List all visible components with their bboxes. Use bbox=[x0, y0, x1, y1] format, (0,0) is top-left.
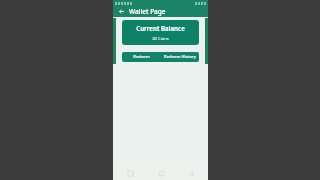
button[interactable]: Back bbox=[186, 168, 196, 178]
button[interactable]: Current Balance bbox=[122, 20, 199, 45]
button[interactable]: Back bbox=[117, 7, 126, 16]
staticText: Current Balance bbox=[136, 24, 185, 32]
staticText: Wallet Page bbox=[129, 7, 166, 16]
staticText: 20 Coins bbox=[152, 36, 169, 42]
staticText: Redeem bbox=[133, 54, 150, 60]
staticText: Redeem History bbox=[164, 54, 196, 60]
button[interactable]: Redeem History bbox=[160, 52, 199, 62]
button[interactable]: Recents bbox=[125, 168, 135, 178]
button[interactable]: Redeem bbox=[122, 52, 160, 62]
button[interactable]: Home bbox=[156, 168, 166, 178]
